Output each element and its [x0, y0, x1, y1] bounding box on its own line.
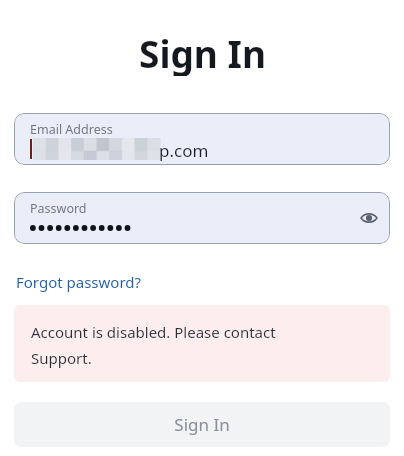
staticText: Sign In: [174, 413, 230, 436]
button[interactable]: Sign In: [14, 402, 390, 447]
button[interactable]: Show password: [352, 201, 386, 235]
staticText: Forgot password?: [16, 272, 142, 292]
staticText: Account is disabled. Please contact: [31, 322, 276, 342]
staticText: Email Address: [30, 121, 113, 138]
button[interactable]: Forgot password?: [14, 268, 144, 296]
staticText: p.com: [159, 139, 209, 162]
button[interactable]: Email Address: [14, 113, 390, 165]
button[interactable]: Password: [14, 192, 390, 244]
staticText: Password: [30, 200, 87, 217]
staticText: Sign In: [139, 28, 266, 76]
staticText: Support.: [31, 348, 92, 368]
